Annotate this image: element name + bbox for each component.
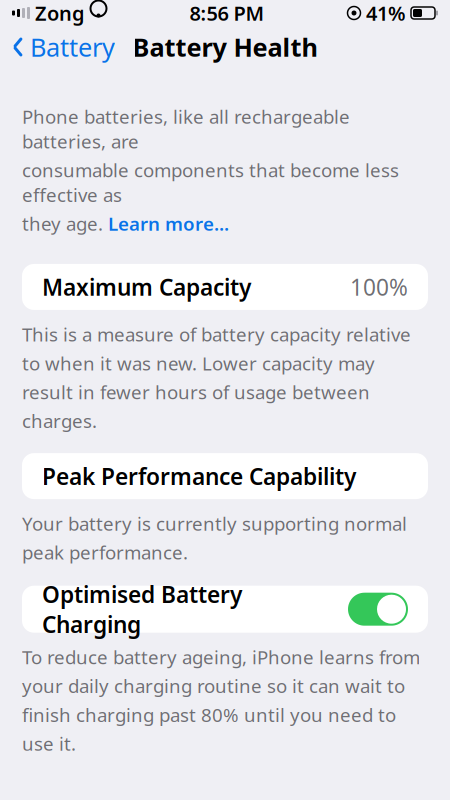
staticText: 100% (350, 272, 408, 302)
staticText: 8:56 PM (189, 0, 264, 26)
staticText: 41% (366, 0, 406, 26)
staticText: Battery (30, 30, 115, 64)
button[interactable]: Battery (0, 24, 127, 70)
staticText: Phone batteries, like all rechargeable b… (22, 104, 350, 154)
staticText: Learn more... (108, 211, 229, 236)
staticText: This is a measure of battery capacity re… (22, 322, 411, 433)
staticText: Battery Health (132, 30, 317, 64)
staticText: Your battery is currently supporting nor… (22, 511, 407, 565)
staticText: consumable components that become less e… (22, 158, 399, 207)
staticText: To reduce battery ageing, iPhone learns … (22, 645, 420, 756)
staticText: Zong (35, 0, 85, 26)
staticText: they age. (22, 211, 103, 236)
button[interactable]: Maximum Capacity (22, 264, 428, 310)
staticText: Maximum Capacity (42, 272, 251, 302)
staticText: Optimised Battery Charging (42, 579, 242, 639)
button[interactable]: Optimised Battery Charging (22, 586, 428, 633)
button[interactable]: Peak Performance Capability (22, 453, 428, 499)
button[interactable]: Learn more... (108, 211, 229, 236)
staticText: Peak Performance Capability (42, 461, 356, 491)
